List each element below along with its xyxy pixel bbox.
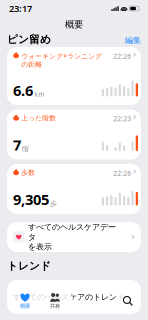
button[interactable]: 上った階数 (7, 109, 141, 159)
button[interactable]: すべてのヘルスケアデータ を表示 (7, 222, 141, 252)
staticText: 22:26 (113, 52, 131, 61)
staticText: 22:23 (113, 114, 131, 123)
button[interactable]: ウォーキング+ランニング の距離 (7, 47, 141, 105)
staticText: 7 (13, 135, 21, 154)
staticText: 6.6 (13, 80, 33, 100)
button[interactable]: 検索 (115, 288, 141, 314)
button[interactable]: 共有 (40, 290, 70, 311)
staticText: ウォーキング+ランニング の距離 (21, 51, 102, 68)
staticText: 23:17 (9, 2, 32, 15)
button[interactable]: 歩数 (7, 164, 141, 214)
staticText: 歩数 (21, 168, 35, 177)
button[interactable]: 編集 (125, 35, 141, 46)
button[interactable]: 概要 (10, 290, 40, 311)
staticText: 編集 (125, 35, 141, 45)
staticText: 22:26 (113, 169, 131, 178)
staticText: 概要 (65, 19, 83, 30)
staticText: 9,305 (13, 189, 49, 209)
staticText: 概要 (20, 303, 30, 309)
staticText: 上った階数 (21, 114, 56, 122)
staticText: すべてのヘルスケアのトレンド (13, 292, 125, 302)
staticText: km (34, 90, 44, 99)
staticText: 歩 (50, 199, 57, 208)
button[interactable]: すべてのヘルスケアのトレンド (7, 280, 141, 314)
staticText: トレンド (7, 259, 51, 272)
staticText: すべてのヘルスケアデータ を表示 (28, 222, 116, 252)
staticText: ピン留め (7, 33, 51, 46)
staticText: 共有 (50, 303, 60, 309)
staticText: 階 (22, 145, 29, 153)
